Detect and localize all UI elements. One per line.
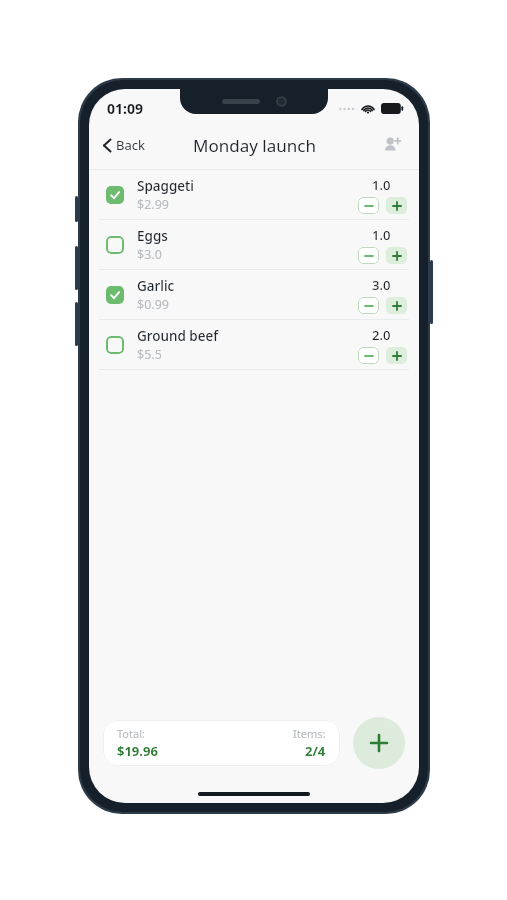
staticText: $3.0 bbox=[137, 246, 162, 263]
staticText: Total: bbox=[117, 726, 145, 741]
button[interactable]: Toggle Spaggeti bbox=[101, 181, 129, 209]
button[interactable]: Increase Garlic bbox=[386, 297, 407, 314]
button[interactable]: Back bbox=[97, 132, 151, 158]
staticText: Spaggeti bbox=[137, 177, 194, 195]
staticText: 1.0 bbox=[372, 176, 391, 194]
staticText: $0.99 bbox=[137, 296, 169, 313]
staticText: 2.0 bbox=[372, 326, 391, 344]
staticText: $2.99 bbox=[137, 196, 169, 213]
staticText: Back bbox=[116, 136, 145, 154]
button[interactable]: Toggle Eggs bbox=[89, 220, 419, 269]
staticText: Monday launch bbox=[193, 134, 316, 157]
button[interactable]: Decrease Spaggeti bbox=[358, 197, 379, 214]
button[interactable]: Decrease Eggs bbox=[358, 247, 379, 264]
button[interactable]: Decrease Ground beef bbox=[358, 347, 379, 364]
button[interactable]: Add person bbox=[375, 128, 409, 162]
staticText: Garlic bbox=[137, 277, 175, 295]
staticText: 2/4 bbox=[305, 742, 326, 760]
staticText: Eggs bbox=[137, 227, 168, 245]
staticText: 3.0 bbox=[372, 276, 391, 294]
button[interactable]: Toggle Garlic bbox=[89, 270, 419, 319]
button[interactable]: Toggle Garlic bbox=[101, 281, 129, 309]
staticText: $19.96 bbox=[117, 742, 158, 760]
staticText: 01:09 bbox=[107, 99, 143, 118]
staticText: 1.0 bbox=[372, 226, 391, 244]
button[interactable]: Increase Spaggeti bbox=[386, 197, 407, 214]
button[interactable]: Increase Ground beef bbox=[386, 347, 407, 364]
staticText: Items: bbox=[293, 726, 326, 741]
button[interactable]: Toggle Eggs bbox=[101, 231, 129, 259]
button[interactable]: Decrease Garlic bbox=[358, 297, 379, 314]
button[interactable]: Toggle Spaggeti bbox=[89, 170, 419, 219]
button[interactable]: Total: bbox=[103, 720, 340, 766]
button[interactable]: Increase Eggs bbox=[386, 247, 407, 264]
button[interactable]: Toggle Ground beef bbox=[101, 331, 129, 359]
button[interactable]: Toggle Ground beef bbox=[89, 320, 419, 369]
staticText: Ground beef bbox=[137, 327, 218, 345]
button[interactable]: Add item bbox=[353, 717, 405, 769]
staticText: $5.5 bbox=[137, 346, 162, 363]
